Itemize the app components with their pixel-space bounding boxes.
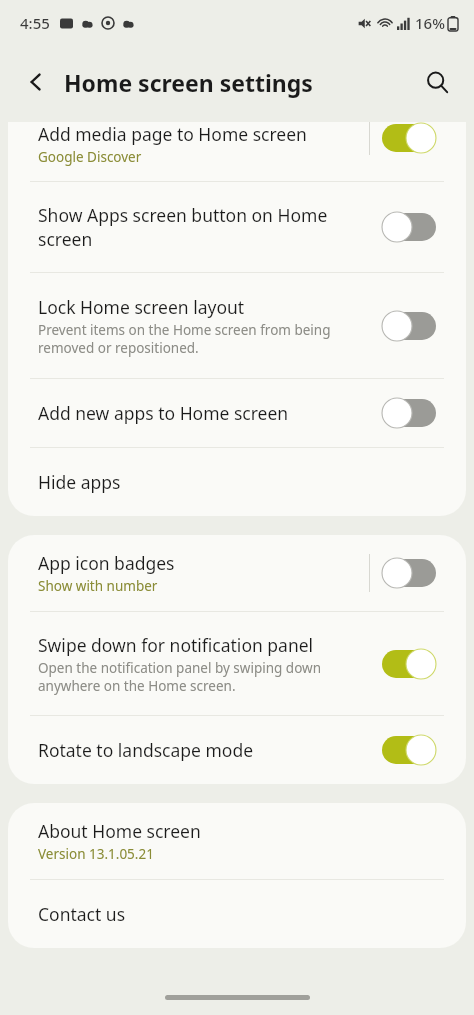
staticText: App icon badges bbox=[38, 551, 175, 575]
staticText: Open the notification panel by swiping d… bbox=[38, 659, 368, 695]
staticText: Version 13.1.05.21 bbox=[38, 845, 154, 863]
button[interactable]: Add media page to Home screen bbox=[8, 122, 466, 181]
staticText: 16% bbox=[415, 13, 445, 33]
staticText: Home screen settings bbox=[64, 67, 313, 98]
button[interactable]: Hide apps bbox=[8, 448, 466, 516]
button[interactable]: Contact us bbox=[8, 880, 466, 948]
staticText: Add new apps to Home screen bbox=[38, 401, 289, 425]
staticText: Show with number bbox=[38, 577, 158, 595]
button[interactable]: Add new apps to Home screen bbox=[8, 379, 466, 447]
button[interactable]: App icon badges bbox=[8, 535, 466, 611]
button[interactable]: Lock Home screen layout bbox=[8, 273, 466, 378]
staticText: Show Apps screen button on Home screen bbox=[38, 203, 368, 251]
staticText: Hide apps bbox=[38, 470, 121, 494]
button[interactable]: Show Apps screen button on Home screen bbox=[8, 182, 466, 272]
button[interactable]: About Home screen bbox=[8, 803, 466, 879]
staticText: 4:55 bbox=[20, 13, 50, 33]
staticText: Rotate to landscape mode bbox=[38, 738, 254, 762]
button[interactable]: On bbox=[382, 649, 436, 679]
button[interactable]: Swipe down for notification panel bbox=[8, 612, 466, 715]
staticText: Swipe down for notification panel bbox=[38, 633, 314, 657]
button[interactable]: Rotate to landscape mode bbox=[8, 716, 466, 784]
button[interactable]: On bbox=[382, 123, 436, 153]
button[interactable]: On bbox=[382, 735, 436, 765]
staticText: Google Discover bbox=[38, 148, 142, 166]
button[interactable]: Search bbox=[414, 59, 460, 105]
button[interactable]: Off bbox=[382, 398, 436, 428]
staticText: About Home screen bbox=[38, 819, 201, 843]
button[interactable]: Off bbox=[382, 212, 436, 242]
button[interactable]: Off bbox=[382, 311, 436, 341]
staticText: Contact us bbox=[38, 902, 126, 926]
button[interactable]: Off bbox=[382, 558, 436, 588]
button[interactable]: Back bbox=[14, 60, 58, 104]
staticText: Add media page to Home screen bbox=[38, 122, 307, 146]
staticText: Prevent items on the Home screen from be… bbox=[38, 321, 368, 357]
staticText: Lock Home screen layout bbox=[38, 295, 245, 319]
